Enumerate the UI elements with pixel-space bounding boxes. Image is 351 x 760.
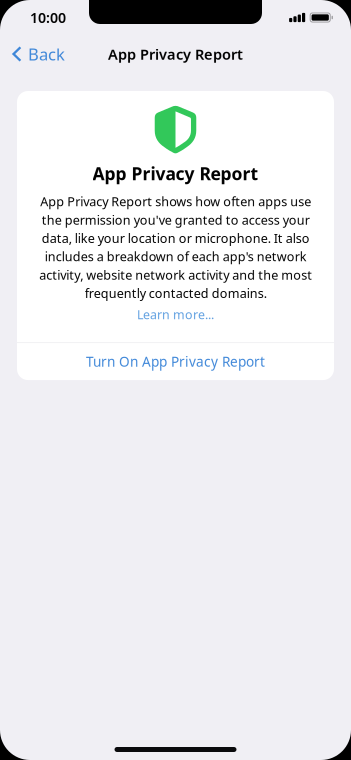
staticText: Turn On App Privacy Report	[86, 352, 265, 371]
staticText: App Privacy Report	[92, 162, 258, 185]
staticText: Back	[28, 43, 65, 65]
button[interactable]: Back	[0, 41, 75, 67]
staticText: 10:00	[30, 8, 66, 27]
staticText: App Privacy Report shows how often apps …	[39, 192, 312, 302]
staticText: App Privacy Report	[108, 44, 243, 64]
button[interactable]: Turn On App Privacy Report	[17, 343, 334, 380]
staticText: Learn more...	[137, 306, 214, 323]
button[interactable]: Learn more...	[17, 305, 334, 323]
